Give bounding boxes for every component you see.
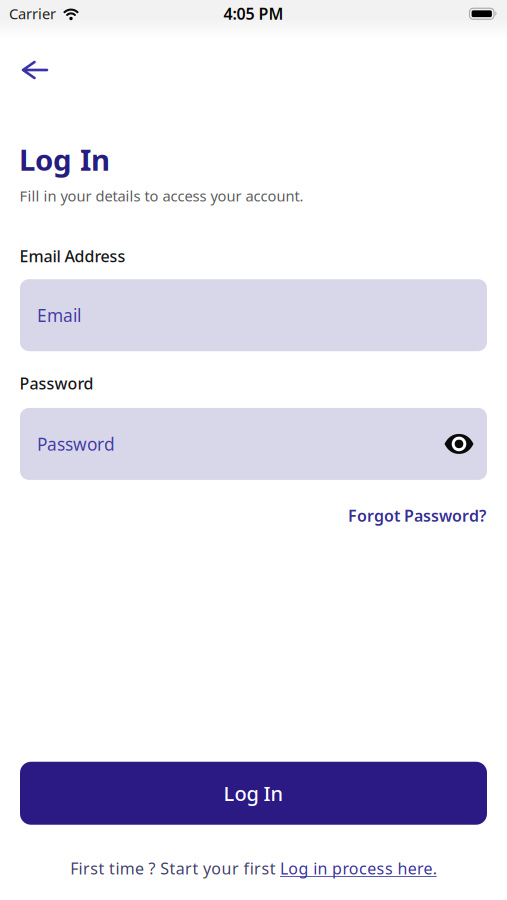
button[interactable]: Log in process here.: [280, 858, 437, 879]
staticText: Password: [19, 373, 93, 394]
staticText: Password: [37, 432, 115, 455]
button[interactable]: Email: [20, 279, 487, 351]
staticText: Log In: [223, 780, 283, 807]
staticText: Email: [37, 304, 81, 327]
button[interactable]: Show password: [444, 434, 473, 454]
button[interactable]: Log In: [20, 762, 487, 825]
staticText: Forgot Password?: [348, 505, 486, 526]
staticText: Carrier: [9, 4, 56, 23]
staticText: Log In: [19, 140, 110, 179]
staticText: Log in process here.: [280, 858, 437, 879]
button[interactable]: Password: [20, 408, 487, 480]
button[interactable]: Back: [21, 61, 49, 79]
staticText: Email Address: [19, 245, 125, 267]
staticText: First time ? Start your first: [70, 858, 280, 879]
staticText: Fill in your details to access your acco…: [19, 186, 303, 205]
staticText: 4:05 PM: [223, 3, 283, 24]
button[interactable]: Forgot Password?: [348, 505, 486, 526]
